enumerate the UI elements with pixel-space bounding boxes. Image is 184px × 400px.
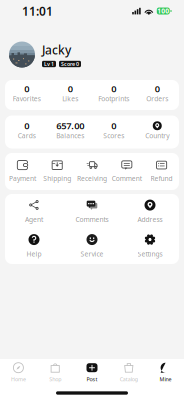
- staticText: Post: [86, 376, 97, 383]
- staticText: Receiving: [77, 174, 107, 183]
- staticText: 0: [24, 120, 29, 132]
- button[interactable]: Comment: [109, 159, 144, 183]
- staticText: Address: [137, 215, 162, 224]
- button[interactable]: Service: [63, 235, 121, 257]
- staticText: Comments: [75, 215, 108, 224]
- staticText: Jacky: [42, 42, 71, 58]
- button[interactable]: Country: [135, 121, 179, 143]
- staticText: 11:01: [22, 3, 53, 19]
- staticText: Lv 1: [44, 60, 54, 67]
- button[interactable]: Post: [74, 359, 110, 385]
- staticText: Country: [145, 131, 169, 140]
- staticText: Shop: [49, 376, 61, 383]
- button[interactable]: Comments: [63, 201, 121, 223]
- staticText: Comment: [112, 174, 142, 183]
- staticText: Service: [80, 250, 103, 258]
- staticText: Orders: [146, 94, 168, 103]
- button[interactable]: Refund: [144, 159, 179, 183]
- staticText: Home: [11, 376, 26, 383]
- staticText: Score 0: [61, 60, 79, 67]
- button[interactable]: 0: [5, 84, 48, 106]
- button[interactable]: 657.00: [48, 121, 92, 143]
- staticText: Shipping: [43, 174, 71, 183]
- button[interactable]: Mine: [147, 359, 184, 385]
- button[interactable]: Agent: [5, 201, 63, 223]
- staticText: Scores: [103, 131, 124, 140]
- staticText: Payment: [9, 174, 36, 183]
- button[interactable]: Payment: [5, 159, 40, 183]
- button[interactable]: Home: [0, 359, 37, 385]
- staticText: Agent: [25, 215, 43, 224]
- button[interactable]: Settings: [121, 235, 179, 257]
- button[interactable]: 0: [92, 84, 135, 106]
- button[interactable]: Catalog: [110, 359, 147, 385]
- button[interactable]: Shop: [37, 359, 74, 385]
- button[interactable]: 0: [48, 84, 92, 106]
- staticText: 0: [111, 120, 116, 132]
- staticText: Settings: [137, 250, 162, 258]
- staticText: 0: [155, 83, 160, 95]
- staticText: Favorites: [13, 94, 41, 103]
- button[interactable]: 0: [92, 121, 135, 143]
- staticText: Footprints: [98, 94, 129, 103]
- staticText: 657.00: [56, 120, 84, 132]
- staticText: Cards: [18, 131, 36, 140]
- button[interactable]: Address: [121, 201, 179, 223]
- staticText: Catalog: [120, 376, 138, 383]
- staticText: Help: [26, 250, 41, 258]
- staticText: 0: [24, 83, 29, 95]
- staticText: Mine: [160, 376, 172, 383]
- staticText: 0: [68, 83, 73, 95]
- staticText: Refund: [151, 174, 173, 183]
- staticText: 100: [157, 7, 169, 15]
- staticText: 0: [111, 83, 116, 95]
- staticText: Likes: [62, 94, 78, 103]
- button[interactable]: Shipping: [40, 159, 75, 183]
- button[interactable]: Jacky: [0, 34, 184, 74]
- button[interactable]: 0: [5, 121, 48, 143]
- button[interactable]: Help: [5, 235, 63, 257]
- button[interactable]: 0: [135, 84, 179, 106]
- staticText: Balances: [56, 131, 84, 140]
- button[interactable]: Receiving: [75, 159, 109, 183]
